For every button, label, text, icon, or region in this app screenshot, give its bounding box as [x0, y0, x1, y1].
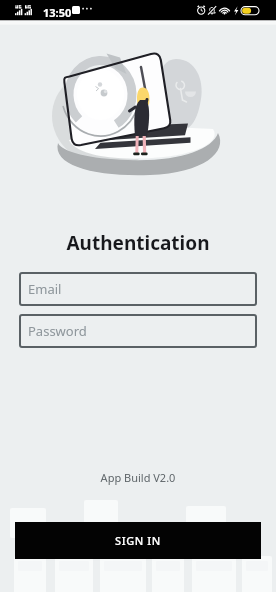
staticText: Email	[28, 280, 62, 298]
button[interactable]: SIGN IN	[15, 522, 261, 559]
staticText: • • •	[82, 5, 92, 13]
staticText: 13:50	[43, 5, 72, 20]
staticText: App Build V2.0	[0, 470, 276, 485]
staticText: Authentication	[0, 230, 276, 256]
staticText: SIGN IN	[115, 533, 161, 548]
button[interactable]: Email	[19, 272, 257, 306]
button[interactable]: Password	[19, 314, 257, 348]
staticText: Password	[28, 322, 87, 340]
